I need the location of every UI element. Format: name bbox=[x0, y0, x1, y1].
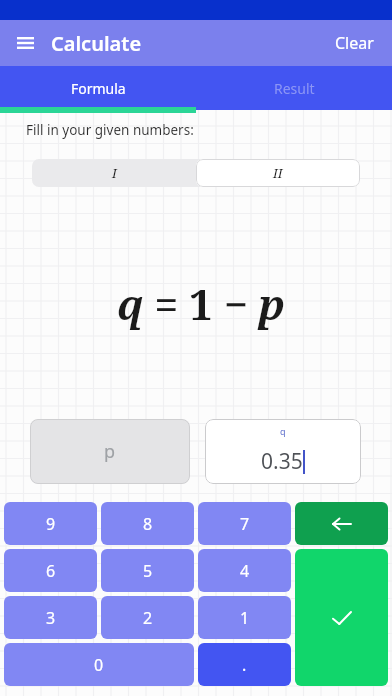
staticText: Fill in your given numbers: bbox=[26, 121, 194, 139]
staticText: 6 bbox=[46, 560, 56, 582]
button[interactable]: q bbox=[205, 419, 361, 484]
button[interactable]: p bbox=[30, 419, 190, 484]
staticText: Formula bbox=[71, 79, 126, 98]
staticText: II bbox=[273, 164, 283, 182]
button[interactable]: I bbox=[32, 159, 196, 187]
button[interactable]: Result bbox=[196, 66, 392, 110]
staticText: 1 bbox=[240, 607, 250, 629]
staticText: Calculate bbox=[51, 30, 142, 57]
button[interactable]: 6 bbox=[4, 549, 97, 592]
staticText: 0 bbox=[94, 654, 104, 676]
button[interactable]: Formula bbox=[0, 66, 196, 110]
staticText: q bbox=[280, 425, 286, 437]
staticText: q = 1 − p bbox=[117, 275, 285, 332]
button[interactable]: . bbox=[198, 643, 291, 686]
staticText: 0.35 bbox=[261, 447, 303, 476]
button[interactable]: 0 bbox=[4, 643, 194, 686]
button[interactable]: 5 bbox=[101, 549, 194, 592]
button[interactable]: 4 bbox=[198, 549, 291, 592]
button[interactable]: 3 bbox=[4, 596, 97, 639]
staticText: p bbox=[104, 439, 116, 464]
button[interactable] bbox=[13, 31, 37, 55]
staticText: Result bbox=[274, 79, 315, 98]
button[interactable] bbox=[295, 549, 388, 686]
button[interactable]: Clear bbox=[335, 32, 392, 54]
staticText: 4 bbox=[240, 560, 250, 582]
button[interactable] bbox=[295, 502, 388, 545]
button[interactable]: 1 bbox=[198, 596, 291, 639]
button[interactable]: 7 bbox=[198, 502, 291, 545]
staticText: 9 bbox=[46, 513, 56, 535]
staticText: 8 bbox=[143, 513, 153, 535]
button[interactable]: 8 bbox=[101, 502, 194, 545]
button[interactable]: 2 bbox=[101, 596, 194, 639]
staticText: . bbox=[242, 654, 247, 676]
staticText: 2 bbox=[143, 607, 153, 629]
staticText: 5 bbox=[143, 560, 153, 582]
staticText: I bbox=[112, 164, 117, 182]
button[interactable]: II bbox=[196, 159, 360, 187]
staticText: 7 bbox=[240, 513, 250, 535]
button[interactable]: 9 bbox=[4, 502, 97, 545]
staticText: Clear bbox=[335, 32, 374, 54]
staticText: 3 bbox=[46, 607, 56, 629]
